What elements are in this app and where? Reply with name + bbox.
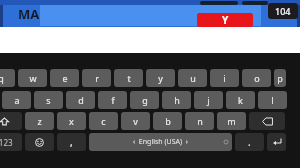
staticText: j: [207, 94, 210, 106]
button[interactable]: e: [50, 69, 79, 87]
button[interactable]: t: [114, 69, 143, 87]
staticText: o: [254, 72, 260, 84]
button[interactable]: f: [98, 91, 127, 109]
staticText: r: [95, 72, 99, 84]
button[interactable]: w: [18, 69, 47, 87]
staticText: c: [101, 115, 106, 127]
button[interactable]: d: [66, 91, 95, 109]
staticText: n: [197, 115, 203, 127]
staticText: e: [62, 72, 68, 84]
button[interactable]: q: [0, 69, 15, 87]
staticText: g: [142, 94, 148, 106]
staticText: s: [46, 94, 51, 106]
button[interactable]: c: [89, 112, 118, 130]
button[interactable]: n: [185, 112, 214, 130]
button[interactable]: Emoji: [25, 133, 54, 151]
staticText: 104: [275, 5, 291, 17]
staticText: h: [174, 94, 180, 106]
button[interactable]: ‹ English (USA) ›: [89, 133, 232, 151]
staticText: t: [127, 72, 131, 84]
staticText: ?123: [0, 137, 13, 148]
staticText: b: [165, 115, 171, 127]
button[interactable]: i: [210, 69, 239, 87]
staticText: f: [111, 94, 115, 106]
staticText: .: [248, 135, 251, 149]
button[interactable]: m: [217, 112, 246, 130]
button[interactable]: .: [235, 133, 264, 151]
button[interactable]: 104: [268, 3, 298, 19]
staticText: Y: [222, 13, 229, 27]
staticText: i: [223, 72, 226, 84]
button[interactable]: Shift: [0, 112, 22, 130]
button[interactable]: [40, 5, 261, 26]
staticText: k: [238, 94, 243, 106]
button[interactable]: o: [242, 69, 271, 87]
button[interactable]: ?123: [0, 133, 22, 151]
button[interactable]: u: [178, 69, 207, 87]
button[interactable]: j: [194, 91, 223, 109]
button[interactable]: y: [146, 69, 175, 87]
button[interactable]: YouTube: [197, 13, 253, 27]
staticText: d: [78, 94, 84, 106]
button[interactable]: v: [121, 112, 150, 130]
button[interactable]: h: [162, 91, 191, 109]
staticText: q: [0, 72, 4, 84]
button[interactable]: p: [274, 69, 286, 87]
staticText: m: [227, 115, 236, 127]
button[interactable]: g: [130, 91, 159, 109]
button[interactable]: Key: [267, 133, 286, 151]
staticText: z: [37, 115, 42, 127]
button[interactable]: x: [57, 112, 86, 130]
button[interactable]: z: [25, 112, 54, 130]
staticText: ,: [70, 135, 73, 149]
staticText: l: [271, 94, 274, 106]
button[interactable]: Key: [249, 112, 285, 130]
button[interactable]: s: [34, 91, 63, 109]
staticText: a: [14, 94, 20, 106]
button[interactable]: a: [2, 91, 31, 109]
button[interactable]: ,: [57, 133, 86, 151]
staticText: u: [190, 72, 196, 84]
button[interactable]: MA: [18, 5, 40, 23]
button[interactable]: b: [153, 112, 182, 130]
staticText: p: [277, 72, 283, 84]
button[interactable]: r: [82, 69, 111, 87]
staticText: y: [158, 72, 163, 84]
button[interactable]: k: [226, 91, 255, 109]
button[interactable]: l: [258, 91, 287, 109]
staticText: ‹ English (USA) ›: [133, 137, 188, 147]
staticText: w: [29, 72, 37, 84]
staticText: v: [133, 115, 138, 127]
staticText: x: [69, 115, 74, 127]
staticText: MA: [18, 5, 40, 23]
